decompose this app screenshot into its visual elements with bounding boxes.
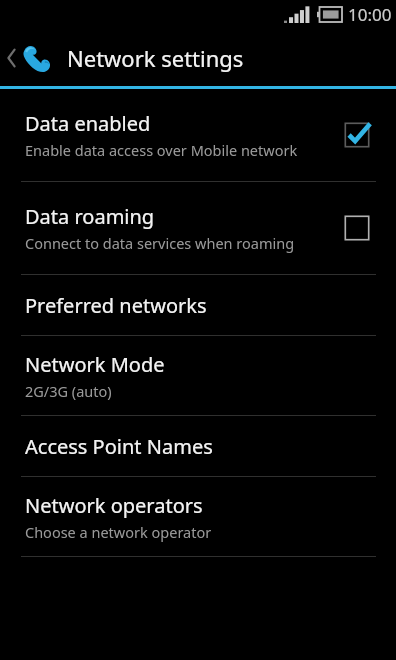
staticText: Preferred networks (25, 292, 207, 319)
staticText: Choose a network operator (25, 522, 212, 542)
staticText: 10:00 (348, 3, 392, 26)
button[interactable]: Enabled (340, 118, 374, 152)
staticText: Enable data access over Mobile network (25, 140, 298, 160)
button[interactable]: Network operators (0, 477, 396, 556)
button[interactable]: Preferred networks (0, 275, 396, 335)
staticText: Network settings (67, 43, 244, 73)
button[interactable]: Disabled (340, 211, 374, 245)
button[interactable]: Data enabled (0, 89, 396, 181)
staticText: Data enabled (25, 110, 151, 137)
staticText: Access Point Names (25, 433, 213, 460)
staticText: 2G/3G (auto) (25, 381, 112, 401)
button[interactable]: Back (0, 29, 396, 86)
staticText: Connect to data services when roaming (25, 233, 295, 253)
staticText: Data roaming (25, 203, 155, 230)
staticText: Network Mode (25, 351, 165, 378)
staticText: Network operators (25, 492, 203, 519)
button[interactable]: Network Mode (0, 336, 396, 415)
button[interactable]: Data roaming (0, 182, 396, 274)
button[interactable]: Access Point Names (0, 416, 396, 476)
